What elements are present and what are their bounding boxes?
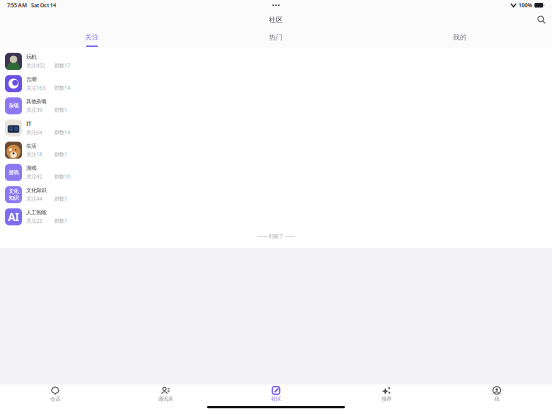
- staticText: 我的: [453, 33, 467, 41]
- staticText: IT: [26, 120, 31, 127]
- staticText: 其他杂项: [26, 98, 46, 105]
- button[interactable]: 热门: [184, 29, 368, 47]
- staticText: 云潮: [26, 76, 36, 83]
- button[interactable]: 我: [442, 387, 552, 402]
- staticText: 关注42: [26, 173, 42, 180]
- button[interactable]: AI: [0, 206, 552, 228]
- button[interactable]: 通讯录: [110, 387, 221, 402]
- staticText: 玩机: [26, 54, 36, 60]
- staticText: 群数14: [54, 129, 70, 136]
- staticText: 热门: [269, 33, 283, 41]
- button[interactable]: 推荐: [331, 387, 442, 402]
- staticText: Sat Oct 14: [31, 2, 56, 9]
- button[interactable]: 我的: [368, 29, 552, 47]
- staticText: 我: [494, 396, 499, 402]
- button[interactable]: Search: [534, 13, 548, 27]
- staticText: 游戏: [8, 169, 18, 176]
- staticText: 生活: [26, 143, 36, 149]
- staticText: 关注18: [26, 151, 42, 158]
- staticText: 通讯录: [158, 396, 173, 402]
- button[interactable]: 会话: [0, 387, 110, 402]
- staticText: 群数10: [54, 173, 70, 180]
- staticText: 群数1: [54, 195, 67, 202]
- staticText: 关注44: [26, 195, 42, 202]
- staticText: 关注22: [26, 217, 42, 224]
- button[interactable]: 关注: [0, 29, 184, 47]
- button[interactable]: 杂项: [0, 95, 552, 117]
- staticText: 关注: [85, 33, 99, 41]
- staticText: 推荐: [381, 396, 391, 402]
- staticText: 群数1: [54, 151, 67, 158]
- button[interactable]: 玩机: [0, 50, 552, 72]
- staticText: 人工智能: [26, 209, 46, 216]
- staticText: 游戏: [26, 165, 36, 171]
- staticText: 关注39: [26, 106, 42, 113]
- staticText: 关注64: [26, 129, 42, 136]
- staticText: 社区: [269, 16, 283, 24]
- button[interactable]: 文化: [0, 183, 552, 206]
- staticText: 社区: [271, 396, 281, 402]
- staticText: 群数1: [54, 106, 67, 113]
- button[interactable]: 云潮: [0, 72, 552, 95]
- staticText: 杂项: [8, 102, 18, 109]
- button[interactable]: IT: [0, 117, 552, 139]
- staticText: 100%: [518, 2, 532, 9]
- staticText: 文化: [8, 188, 18, 194]
- staticText: 7:55 AM: [7, 2, 27, 9]
- staticText: 群数17: [54, 62, 70, 69]
- button[interactable]: 社区: [221, 387, 331, 402]
- staticText: 关注452: [26, 62, 45, 69]
- staticText: 群数14: [54, 84, 70, 91]
- button[interactable]: 游戏: [0, 161, 552, 183]
- staticText: —— 到底了 ——: [257, 232, 294, 239]
- staticText: 群数1: [54, 217, 67, 224]
- staticText: 知识: [8, 195, 18, 201]
- button[interactable]: 生活: [0, 139, 552, 161]
- staticText: 关注163: [26, 84, 45, 91]
- staticText: 文化知识: [26, 187, 46, 194]
- staticText: AI: [8, 210, 19, 224]
- staticText: 会话: [50, 396, 60, 402]
